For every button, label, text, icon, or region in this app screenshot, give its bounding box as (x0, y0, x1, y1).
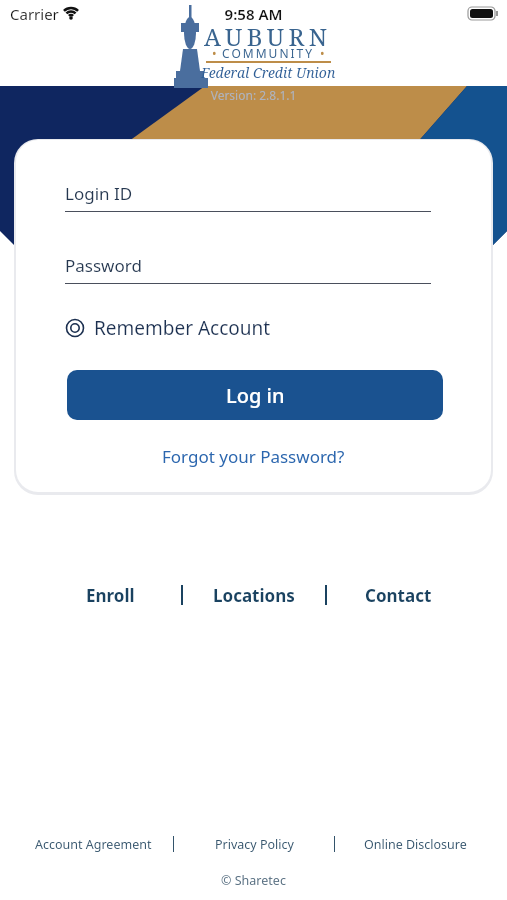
button[interactable]: Log in (67, 370, 443, 420)
staticText: COMMUNITY (217, 45, 320, 61)
staticText: Password (65, 254, 142, 277)
button[interactable]: Account Agreement (13, 832, 173, 856)
button[interactable]: Enroll (39, 580, 181, 610)
button[interactable]: Remember Account (65, 315, 271, 341)
staticText: Remember Account (94, 315, 271, 341)
staticText: • (212, 45, 217, 61)
staticText: Version: 2.8.1.1 (0, 87, 507, 103)
staticText: Privacy Policy (215, 836, 294, 853)
staticText: Carrier (10, 4, 59, 24)
staticText: Locations (213, 584, 295, 607)
button[interactable]: Online Disclosure (335, 832, 495, 856)
staticText: Login ID (65, 182, 133, 205)
staticText: Online Disclosure (364, 836, 467, 853)
staticText: Account Agreement (35, 836, 152, 853)
staticText: Log in (226, 382, 285, 409)
button[interactable]: Locations (183, 580, 325, 610)
button[interactable]: Contact (327, 580, 469, 610)
button[interactable]: Privacy Policy (174, 832, 334, 856)
staticText: • (320, 45, 325, 61)
staticText: Enroll (86, 584, 135, 607)
staticText: Forgot your Password? (162, 445, 345, 468)
staticText: Contact (365, 584, 432, 607)
button[interactable]: Password (65, 242, 431, 284)
button[interactable]: Forgot your Password? (16, 440, 491, 472)
staticText: © Sharetec (0, 872, 507, 889)
staticText: AUBURN (204, 20, 332, 53)
staticText: 9:58 AM (0, 4, 507, 24)
button[interactable]: Login ID (65, 170, 431, 212)
staticText: Federal Credit Union (201, 63, 336, 82)
